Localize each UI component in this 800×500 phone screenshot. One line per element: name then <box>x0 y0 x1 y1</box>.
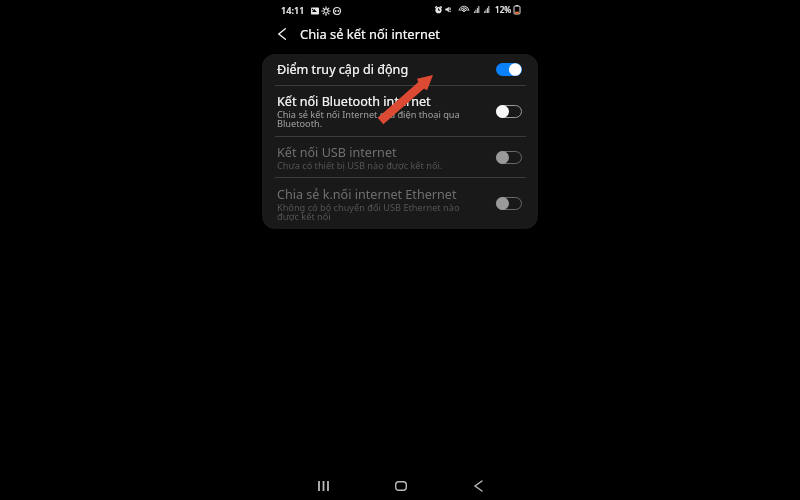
button[interactable]: Back <box>272 24 292 44</box>
staticText: 12% <box>495 4 512 15</box>
staticText: Điểm truy cập di động <box>277 61 409 78</box>
button[interactable]: Off <box>496 105 522 118</box>
staticText: Chia sẻ k.nối internet Ethernet <box>277 186 457 203</box>
button[interactable]: Off <box>496 151 522 164</box>
button[interactable]: Home <box>363 469 439 500</box>
button[interactable]: Off <box>496 197 522 210</box>
button[interactable]: On <box>496 63 522 76</box>
button[interactable]: Back <box>440 469 516 500</box>
staticText: Chia sẻ kết nối internet <box>300 25 440 43</box>
staticText: Chia sẻ kết nối Internet của điện thoại … <box>277 108 460 130</box>
button[interactable]: Chia sẻ k.nối internet Ethernet <box>262 177 538 229</box>
staticText: 14:11 <box>281 4 305 17</box>
staticText: Kết nối USB internet <box>277 144 397 161</box>
staticText: Không có bộ chuyển đổi USB Ethernet nào … <box>277 201 460 223</box>
button[interactable]: Điểm truy cập di động <box>262 54 538 85</box>
button[interactable]: Kết nối Bluetooth internet <box>262 85 538 136</box>
staticText: Kết nối Bluetooth internet <box>277 93 431 110</box>
button[interactable]: Kết nối USB internet <box>262 136 538 177</box>
button[interactable]: Recent apps <box>285 469 361 500</box>
staticText: Chưa có thiết bị USB nào được kết nối. <box>277 159 443 172</box>
